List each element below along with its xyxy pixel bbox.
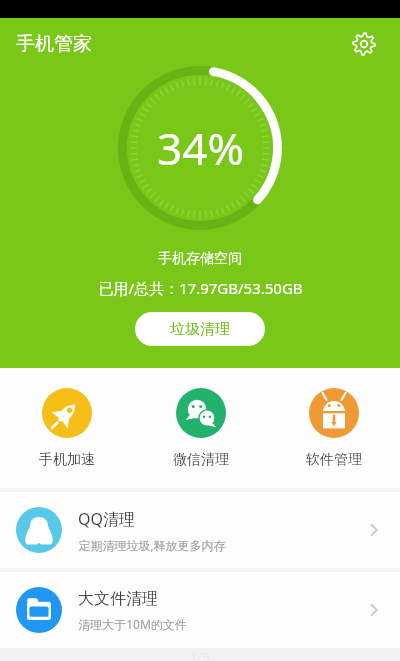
staticText: 垃圾清理 [170,320,230,339]
button[interactable]: 垃圾清理 [135,312,265,346]
staticText: 手机存储空间 [158,250,242,268]
staticText: 软件管理 [306,451,362,469]
button[interactable]: 软件管理 [267,368,400,488]
staticText: QQ清理 [78,508,135,530]
staticText: 定期清理垃圾,释放更多内存 [78,537,226,553]
staticText: 手机加速 [39,451,95,469]
staticText: 34% [157,118,244,178]
button[interactable]: QQ清理 [0,492,400,568]
staticText: 手机管家 [16,32,92,56]
button[interactable]: 微信清理 [134,368,267,488]
staticText: 已用/总共：17.97GB/53.50GB [98,278,303,298]
staticText: 大文件清理 [78,589,158,609]
button[interactable]: 大文件清理 [0,572,400,648]
staticText: 微信清理 [173,451,229,469]
button[interactable]: 手机加速 [0,368,134,488]
button[interactable]: Settings [344,24,384,64]
staticText: 清理大于10M的文件 [78,616,187,632]
